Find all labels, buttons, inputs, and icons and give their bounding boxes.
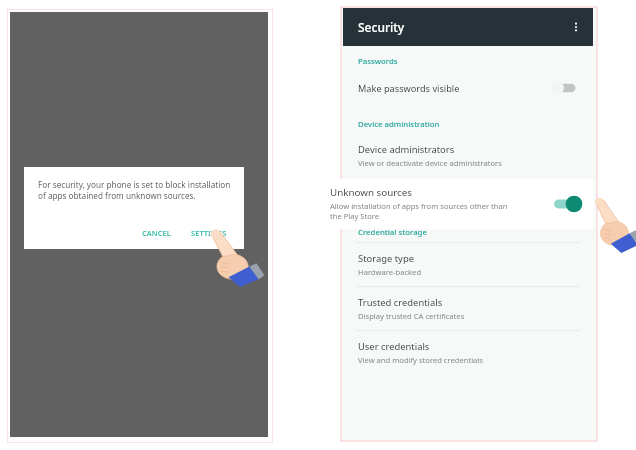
staticText: Unknown sources <box>330 186 412 199</box>
button[interactable]: Device administrators <box>343 134 593 177</box>
staticText: Hardware-backed <box>358 267 422 277</box>
staticText: CANCEL <box>142 228 171 238</box>
staticText: Display trusted CA certificates <box>358 311 465 321</box>
staticText: For security, your phone is set to block… <box>38 179 232 201</box>
staticText: View or deactivate device administrators <box>358 158 502 168</box>
button[interactable]: Make passwords visible <box>343 71 593 105</box>
staticText: Make passwords visible <box>358 82 460 95</box>
staticText: Credential storage <box>358 227 427 238</box>
staticText: Device administration <box>358 119 440 130</box>
staticText: Trusted credentials <box>358 296 443 309</box>
button[interactable]: Security <box>343 8 593 46</box>
staticText: Passwords <box>358 56 398 67</box>
staticText: User credentials <box>358 340 430 353</box>
button[interactable]: User credentials <box>343 330 593 374</box>
button[interactable]: Unknown sources toggle <box>554 196 582 212</box>
staticText: View and modify stored credentials <box>358 355 483 365</box>
button[interactable]: More options <box>559 10 593 44</box>
staticText: Allow installation of apps from sources … <box>330 201 508 221</box>
button[interactable]: Make passwords visible toggle <box>551 81 577 95</box>
button[interactable]: SETTINGS <box>184 225 234 241</box>
button[interactable]: Unknown sources <box>302 179 594 229</box>
button[interactable]: CANCEL <box>135 225 178 241</box>
staticText: Security <box>358 19 405 35</box>
staticText: Device administrators <box>358 143 455 156</box>
staticText: Storage type <box>358 252 414 265</box>
button[interactable]: Storage type <box>343 242 593 286</box>
staticText: SETTINGS <box>191 228 227 238</box>
button[interactable]: Trusted credentials <box>343 286 593 330</box>
